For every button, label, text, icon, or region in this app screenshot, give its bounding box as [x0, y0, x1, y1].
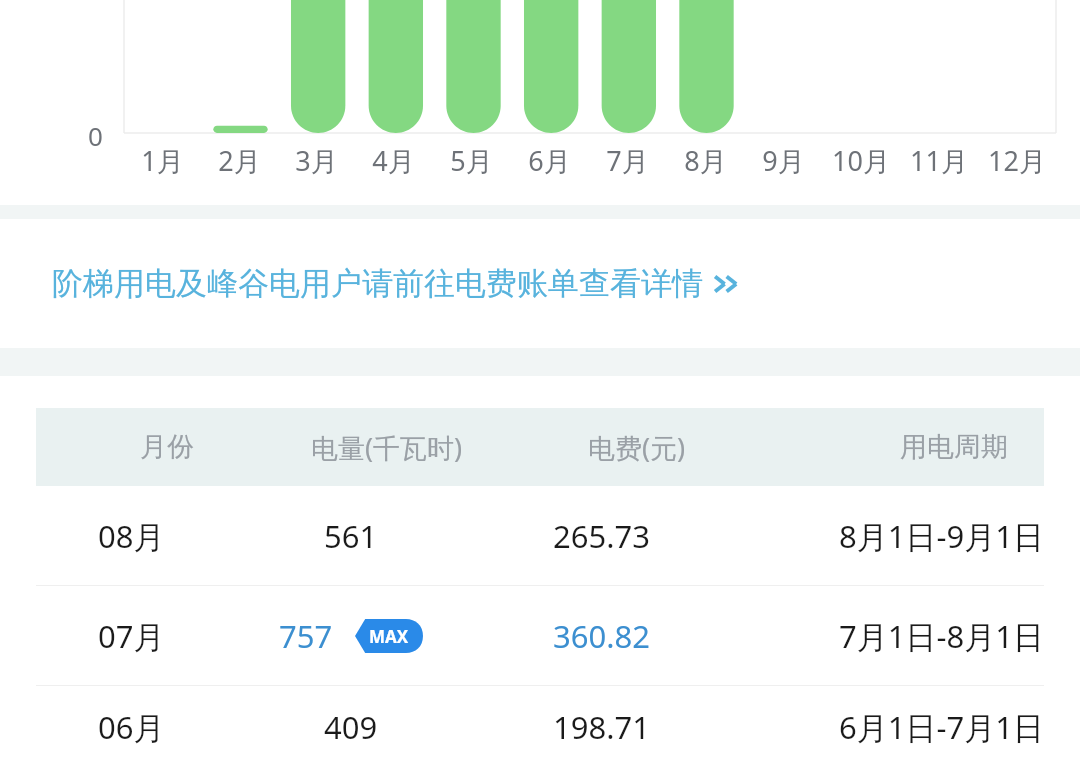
staticText: 用电周期 — [900, 430, 1008, 464]
staticText: 7月 — [606, 142, 649, 179]
staticText: 8月1日-9月1日 — [839, 515, 1044, 557]
staticText: 电量(千瓦时) — [311, 429, 463, 466]
staticText: 阶梯用电及峰谷电用户请前往电费账单查看详情 — [52, 264, 703, 303]
staticText: 5月 — [450, 142, 493, 179]
staticText: 06月 — [98, 706, 165, 748]
button[interactable]: 07月 — [0, 586, 1080, 685]
staticText: 9月 — [762, 142, 805, 179]
staticText: 360.82 — [553, 615, 650, 657]
staticText: 月份 — [140, 430, 194, 464]
staticText: 6月 — [528, 142, 571, 179]
staticText: 07月 — [98, 615, 165, 657]
button[interactable]: 08月 — [0, 486, 1080, 585]
staticText: 561 — [324, 515, 378, 557]
button[interactable]: 阶梯用电及峰谷电用户请前往电费账单查看详情 — [0, 219, 1080, 348]
staticText: 10月 — [832, 142, 890, 179]
staticText: 2月 — [218, 142, 261, 179]
staticText: 409 — [324, 706, 378, 748]
staticText: 电费(元) — [588, 429, 686, 466]
staticText: 6月1日-7月1日 — [839, 706, 1044, 748]
staticText: MAX — [369, 625, 409, 648]
staticText: 265.73 — [553, 515, 650, 557]
staticText: 1月 — [141, 142, 184, 179]
staticText: 08月 — [98, 515, 165, 557]
staticText: 7月1日-8月1日 — [839, 615, 1044, 657]
staticText: 0 — [88, 118, 103, 153]
staticText: 11月 — [910, 142, 968, 179]
button[interactable]: 06月 — [0, 686, 1080, 768]
staticText: 3月 — [295, 142, 338, 179]
staticText: 8月 — [684, 142, 727, 179]
staticText: 757 — [279, 615, 333, 657]
staticText: 12月 — [988, 142, 1046, 179]
staticText: 198.71 — [553, 706, 650, 748]
staticText: 4月 — [372, 142, 415, 179]
